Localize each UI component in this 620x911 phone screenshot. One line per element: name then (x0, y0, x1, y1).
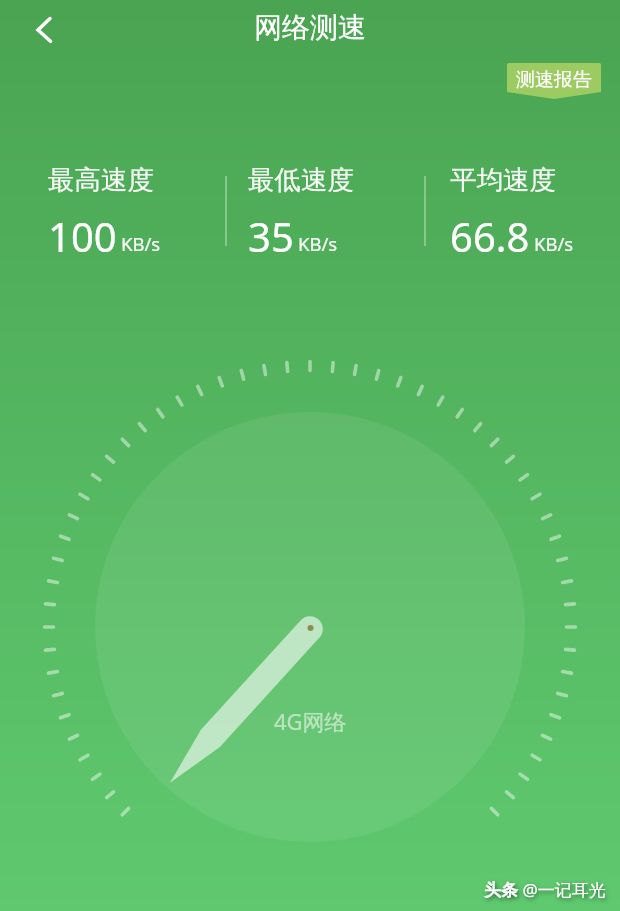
staticText: 最高速度 (48, 163, 154, 196)
staticText: KB/s (534, 231, 574, 256)
staticText: 网络测速 (254, 10, 366, 45)
button[interactable]: 测速报告 (507, 63, 601, 99)
staticText: 测速报告 (516, 68, 592, 92)
staticText: 35 (248, 209, 294, 263)
staticText: 66.8 (450, 209, 530, 263)
staticText: 平均速度 (450, 163, 556, 196)
staticText: 100 (48, 209, 117, 263)
button[interactable] (28, 10, 62, 50)
staticText: 头条 @一记耳光 (484, 878, 606, 901)
staticText: KB/s (298, 231, 338, 256)
staticText: KB/s (121, 231, 161, 256)
staticText: 最低速度 (248, 163, 354, 196)
staticText: 4G网络 (274, 706, 347, 736)
